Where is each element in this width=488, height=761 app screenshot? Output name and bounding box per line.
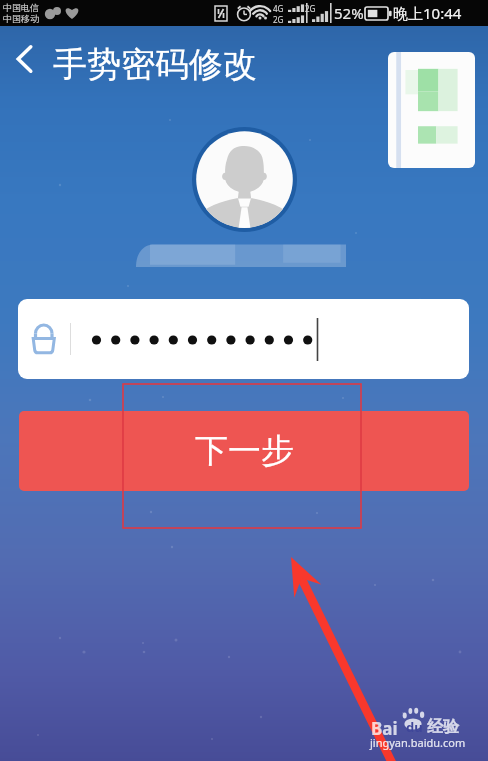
staticText: 下一步 bbox=[195, 430, 294, 472]
staticText: 经验 bbox=[427, 717, 459, 737]
staticText: 中国移动 bbox=[3, 13, 39, 24]
staticText: 晚上10:44 bbox=[393, 3, 462, 23]
staticText: jingyan.baidu.com bbox=[370, 735, 466, 750]
button[interactable] bbox=[18, 299, 469, 379]
staticText: 2G bbox=[305, 3, 316, 14]
button[interactable]: 下一步 bbox=[19, 411, 469, 491]
staticText: 中国电信 bbox=[3, 2, 39, 13]
staticText: 52% bbox=[334, 3, 364, 23]
staticText: 4G bbox=[273, 3, 284, 14]
button[interactable]: Back bbox=[6, 36, 46, 82]
staticText: 2G bbox=[273, 14, 284, 25]
staticText: Bai bbox=[371, 717, 398, 740]
staticText: du bbox=[406, 718, 423, 736]
staticText: 手势密码修改 bbox=[53, 43, 257, 86]
